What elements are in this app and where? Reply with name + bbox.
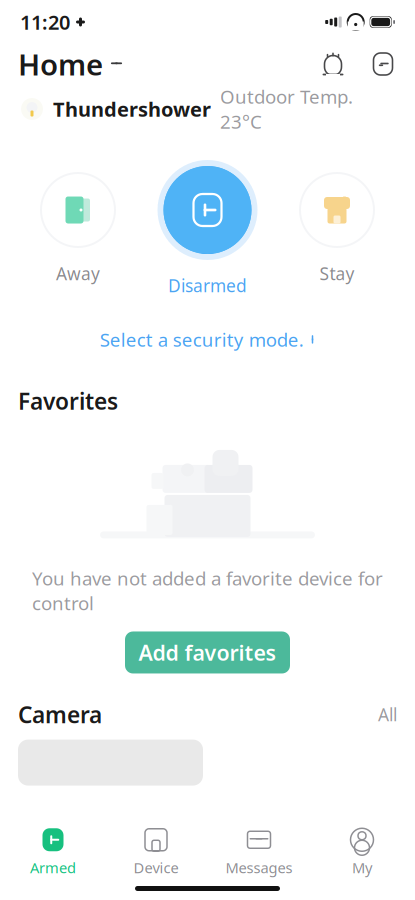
button[interactable]: Security status: [369, 50, 397, 78]
staticText: Thundershower: [53, 96, 211, 122]
staticText: Disarmed: [168, 274, 247, 297]
button[interactable]: Alarm: [319, 50, 347, 78]
staticText: You have not added a favorite device for…: [32, 566, 383, 615]
staticText: Add favorites: [138, 638, 276, 667]
staticText: Outdoor Temp. 23°C: [220, 84, 353, 134]
staticText: Camera: [18, 699, 102, 730]
staticText: 11:20: [20, 9, 70, 35]
button[interactable]: Select a security mode.: [86, 319, 329, 360]
button[interactable]: Device: [104, 826, 207, 878]
staticText: Armed: [30, 858, 76, 877]
button[interactable]: All: [378, 703, 397, 726]
staticText: Device: [133, 858, 178, 877]
button[interactable]: Add favorites: [125, 631, 290, 673]
staticText: Home: [18, 44, 103, 83]
button[interactable]: Armed: [1, 826, 104, 878]
staticText: Favorites: [18, 386, 118, 416]
staticText: Away: [56, 262, 100, 285]
button[interactable]: Messages: [207, 826, 310, 878]
button[interactable]: Stay: [291, 172, 383, 285]
staticText: All: [378, 703, 397, 726]
button[interactable]: My: [310, 826, 413, 878]
staticText: Messages: [225, 858, 292, 877]
button[interactable]: Home: [18, 44, 123, 83]
staticText: Stay: [319, 262, 354, 285]
staticText: Select a security mode.: [100, 327, 304, 352]
staticText: My: [352, 858, 372, 877]
button[interactable]: Away: [32, 172, 124, 285]
button[interactable]: Disarmed: [157, 160, 257, 297]
